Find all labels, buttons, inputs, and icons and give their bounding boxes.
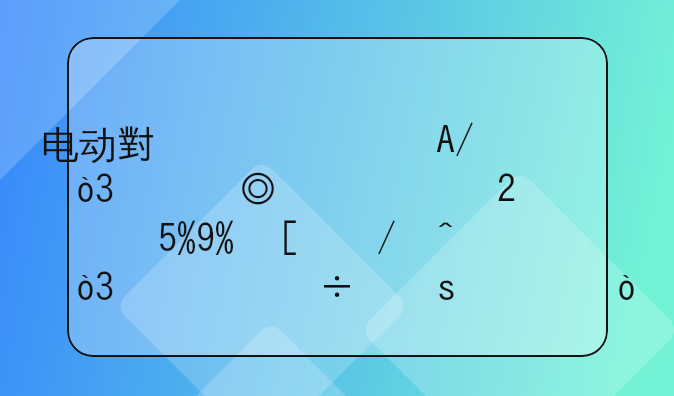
button[interactable] <box>67 37 608 357</box>
staticText: 2 <box>497 170 516 208</box>
staticText: A/ <box>436 121 474 159</box>
staticText: 电动對 <box>41 121 155 169</box>
staticText: ò <box>617 268 636 306</box>
staticText: 5%9% <box>158 219 234 257</box>
staticText: s <box>437 268 456 306</box>
staticText: ◎ <box>239 170 277 208</box>
staticText: ò3 <box>76 268 114 306</box>
staticText: ^ <box>436 219 455 257</box>
staticText: ÷ <box>318 268 356 306</box>
staticText: [ <box>280 219 299 257</box>
staticText: ò3 <box>76 170 114 208</box>
staticText: / <box>377 219 396 257</box>
